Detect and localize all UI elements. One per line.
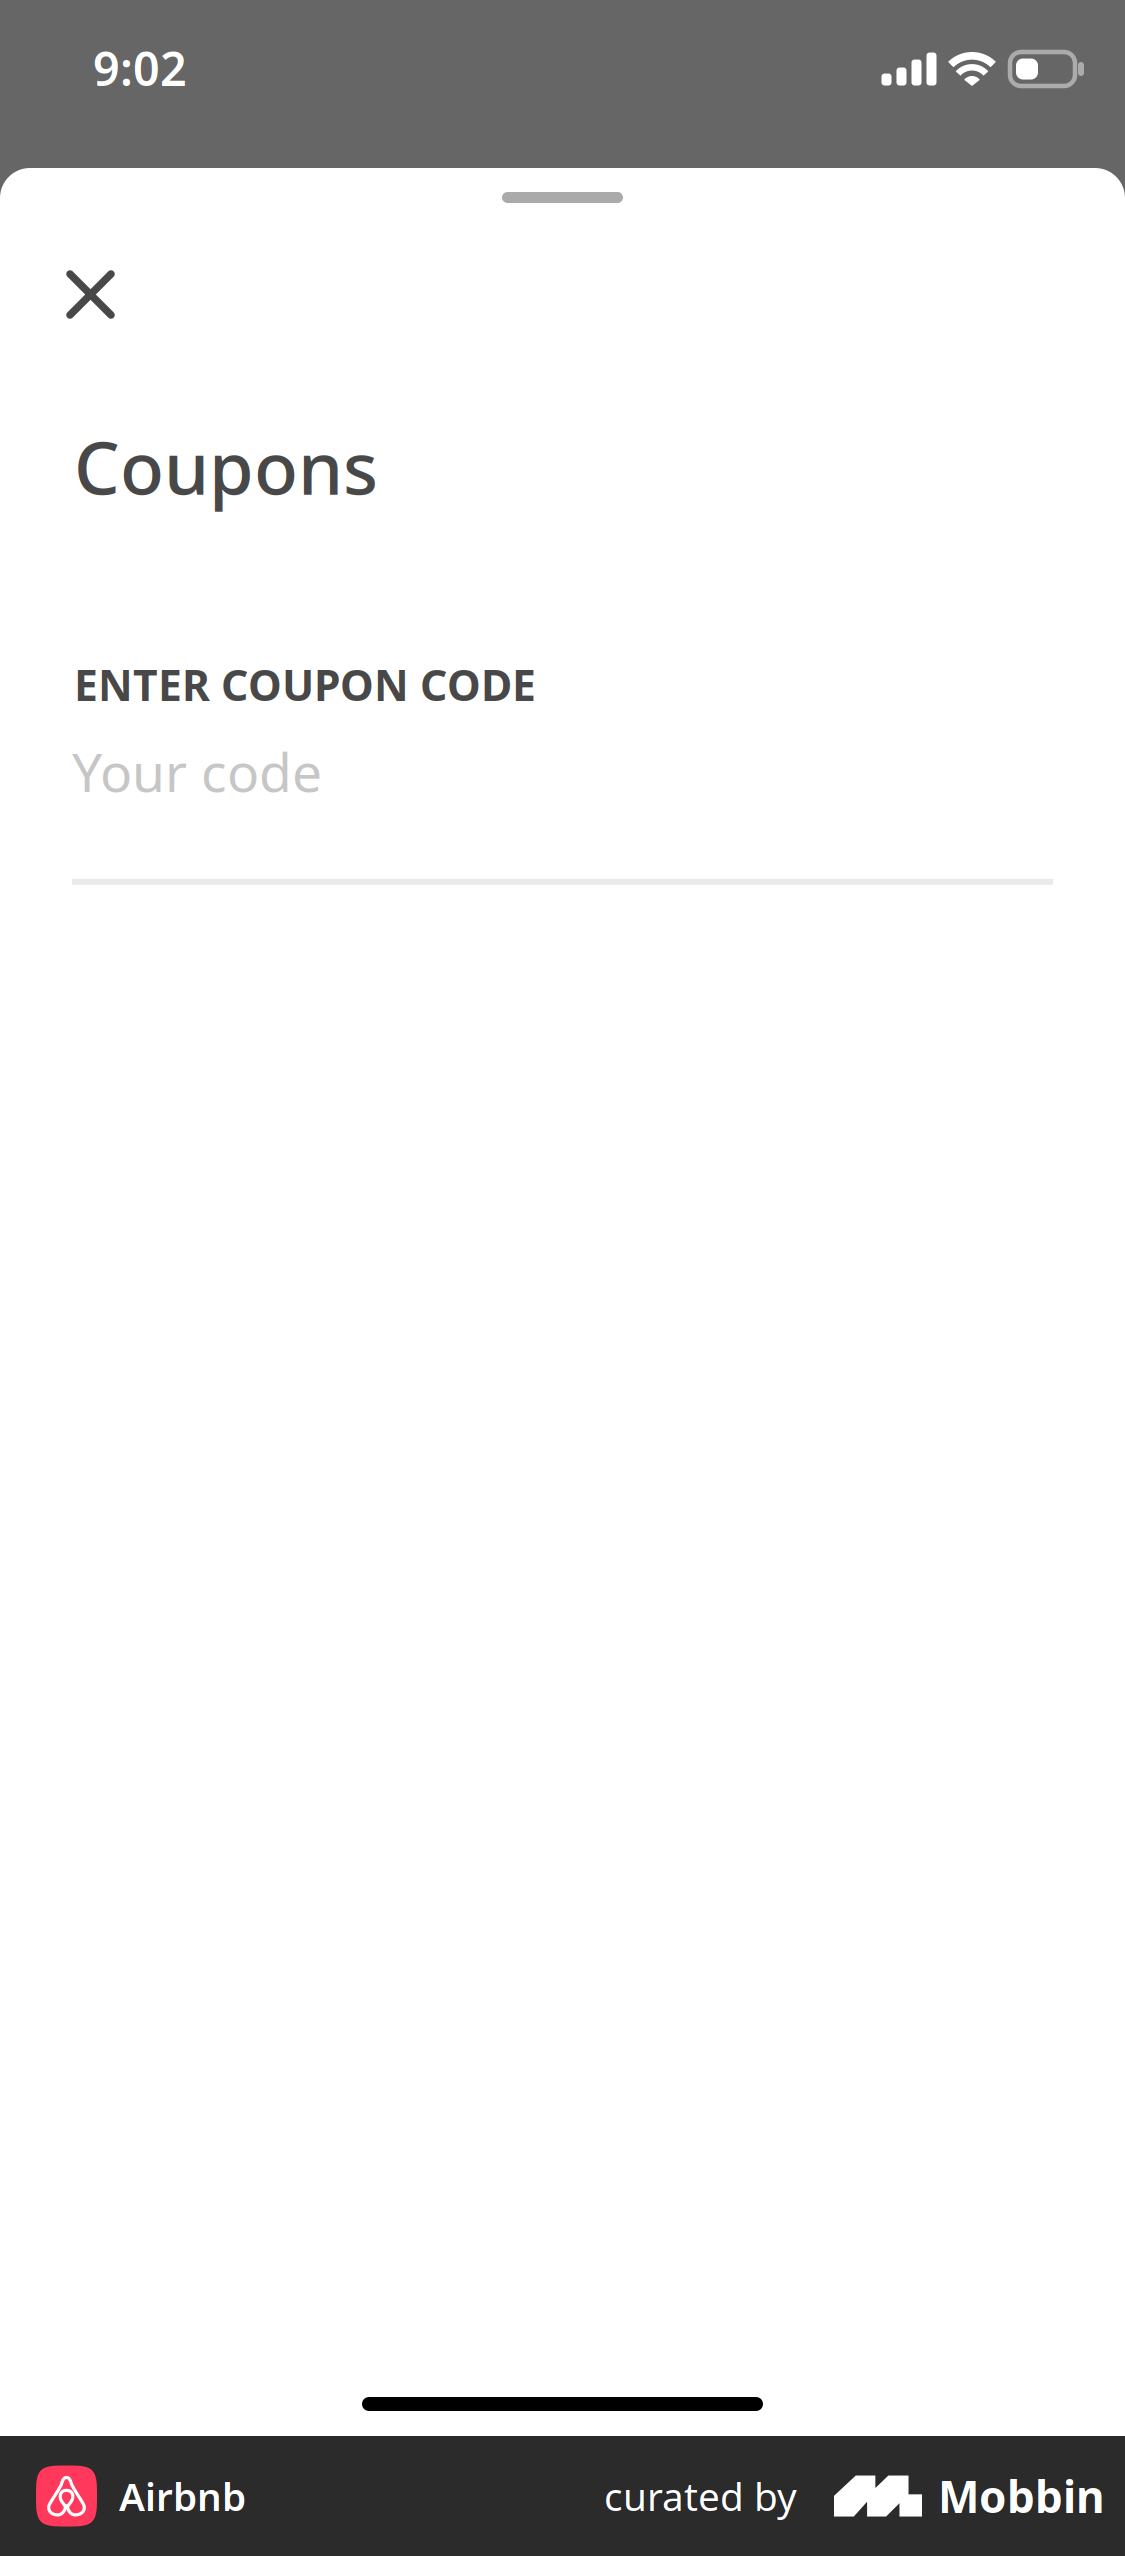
button[interactable]: Close (46, 250, 135, 339)
staticText: Mobbin (938, 2467, 1105, 2525)
staticText: Your code (72, 736, 322, 807)
staticText: ENTER COUPON CODE (74, 656, 536, 713)
staticText: curated by (604, 2470, 797, 2522)
staticText: 9:02 (93, 37, 187, 99)
button[interactable]: Your code (0, 736, 1125, 885)
staticText: Coupons (74, 419, 378, 515)
staticText: Airbnb (119, 2470, 246, 2522)
